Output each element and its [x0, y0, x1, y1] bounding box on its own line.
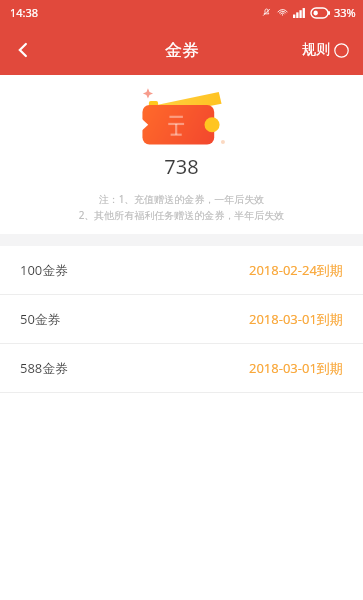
- staticText: 规则: [302, 41, 330, 59]
- button[interactable]: 规则: [300, 35, 351, 65]
- staticText: 2018-03-01到期: [249, 310, 343, 328]
- staticText: 33%: [334, 5, 356, 20]
- button[interactable]: 100金券: [0, 246, 363, 294]
- staticText: 金券: [165, 40, 199, 61]
- staticText: 2018-02-24到期: [249, 261, 343, 279]
- button[interactable]: 50金券: [0, 295, 363, 343]
- button[interactable]: 588金券: [0, 344, 363, 392]
- staticText: 2、其他所有福利任务赠送的金券，半年后失效: [0, 208, 363, 222]
- staticText: 注：1、充值赠送的金券，一年后失效: [0, 192, 363, 206]
- staticText: 588金券: [20, 359, 69, 377]
- staticText: 738: [0, 153, 363, 180]
- staticText: 50金券: [20, 310, 61, 328]
- staticText: 100金券: [20, 261, 69, 279]
- staticText: 2018-03-01到期: [249, 359, 343, 377]
- staticText: 14:38: [10, 5, 39, 20]
- button[interactable]: Back: [0, 27, 46, 73]
